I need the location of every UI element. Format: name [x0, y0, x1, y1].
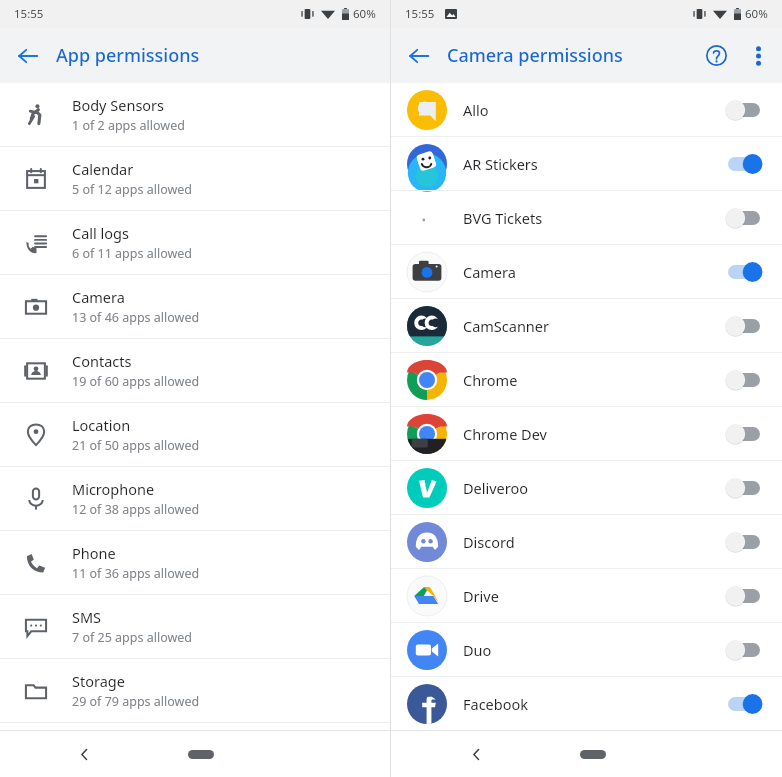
staticText: Microphone — [72, 479, 155, 499]
button[interactable]: Toggle off — [724, 367, 764, 393]
button[interactable]: Drive — [391, 569, 782, 622]
button[interactable]: Toggle off — [724, 529, 764, 555]
button[interactable]: Contacts — [0, 339, 390, 402]
button[interactable]: Toggle on — [724, 259, 764, 285]
button[interactable]: Discord — [391, 515, 782, 568]
button[interactable]: Calendar — [0, 147, 390, 210]
button[interactable]: Microphone — [0, 467, 390, 530]
button[interactable]: AR Stickers — [391, 137, 782, 190]
button[interactable]: Home — [175, 736, 227, 772]
button[interactable]: Deliveroo — [391, 461, 782, 514]
button[interactable]: Toggle on — [724, 691, 764, 717]
staticText: 13 of 46 apps allowed — [72, 309, 200, 326]
staticText: 29 of 79 apps allowed — [72, 693, 200, 710]
button[interactable]: Toggle off — [724, 205, 764, 231]
button[interactable]: Back — [0, 28, 56, 83]
button[interactable]: Toggle off — [724, 583, 764, 609]
button[interactable]: Toggle off — [724, 475, 764, 501]
staticText: 15:55 — [14, 6, 44, 22]
button[interactable]: Location — [0, 403, 390, 466]
button[interactable]: Toggle off — [724, 637, 764, 663]
staticText: Deliveroo — [463, 478, 724, 498]
button[interactable]: Toggle on — [724, 151, 764, 177]
staticText: Body Sensors — [72, 95, 165, 115]
button[interactable]: Phone — [0, 531, 390, 594]
staticText: Location — [72, 415, 131, 435]
button[interactable]: Toggle off — [724, 313, 764, 339]
button[interactable]: SMS — [0, 595, 390, 658]
button[interactable]: More options — [738, 28, 778, 83]
staticText: Camera — [463, 262, 724, 282]
staticText: 1 of 2 apps allowed — [72, 117, 185, 134]
staticText: 21 of 50 apps allowed — [72, 437, 200, 454]
staticText: CamScanner — [463, 316, 724, 336]
staticText: 60% — [745, 6, 768, 22]
staticText: Camera — [72, 287, 125, 307]
staticText: Drive — [463, 586, 724, 606]
button[interactable]: Chrome Dev — [391, 407, 782, 460]
staticText: Call logs — [72, 223, 129, 243]
staticText: Storage — [72, 671, 125, 691]
staticText: SMS — [72, 607, 102, 627]
button[interactable]: Chrome — [391, 353, 782, 406]
button[interactable]: Camera — [0, 275, 390, 338]
button[interactable]: Back — [62, 732, 106, 776]
button[interactable]: Body Sensors — [0, 83, 390, 146]
staticText: 5 of 12 apps allowed — [72, 181, 193, 198]
button[interactable]: BVG Tickets — [391, 191, 782, 244]
staticText: 7 of 25 apps allowed — [72, 629, 193, 646]
staticText: App permissions — [56, 43, 390, 68]
staticText: 6 of 11 apps allowed — [72, 245, 193, 262]
staticText: 60% — [353, 6, 376, 22]
button[interactable]: Help — [694, 28, 738, 83]
button[interactable]: Facebook — [391, 677, 782, 730]
staticText: Calendar — [72, 159, 134, 179]
staticText: BVG Tickets — [463, 208, 724, 228]
staticText: 19 of 60 apps allowed — [72, 373, 200, 390]
staticText: Facebook — [463, 694, 724, 714]
button[interactable]: Camera — [391, 245, 782, 298]
staticText: AR Stickers — [463, 154, 724, 174]
button[interactable]: Back — [454, 732, 498, 776]
button[interactable]: Toggle off — [724, 97, 764, 123]
staticText: 11 of 36 apps allowed — [72, 565, 200, 582]
button[interactable]: Allo — [391, 83, 782, 136]
staticText: Chrome Dev — [463, 424, 724, 444]
button[interactable]: Duo — [391, 623, 782, 676]
button[interactable]: Toggle off — [724, 421, 764, 447]
staticText: Discord — [463, 532, 724, 552]
staticText: Camera permissions — [447, 43, 694, 68]
button[interactable]: Home — [567, 736, 619, 772]
staticText: Chrome — [463, 370, 724, 390]
button[interactable]: Back — [391, 28, 447, 83]
staticText: Allo — [463, 100, 724, 120]
staticText: 12 of 38 apps allowed — [72, 501, 200, 518]
button[interactable]: Storage — [0, 659, 390, 722]
button[interactable]: CamScanner — [391, 299, 782, 352]
staticText: Contacts — [72, 351, 132, 371]
staticText: Phone — [72, 543, 116, 563]
button[interactable]: Call logs — [0, 211, 390, 274]
staticText: Duo — [463, 640, 724, 660]
staticText: 15:55 — [405, 6, 435, 22]
